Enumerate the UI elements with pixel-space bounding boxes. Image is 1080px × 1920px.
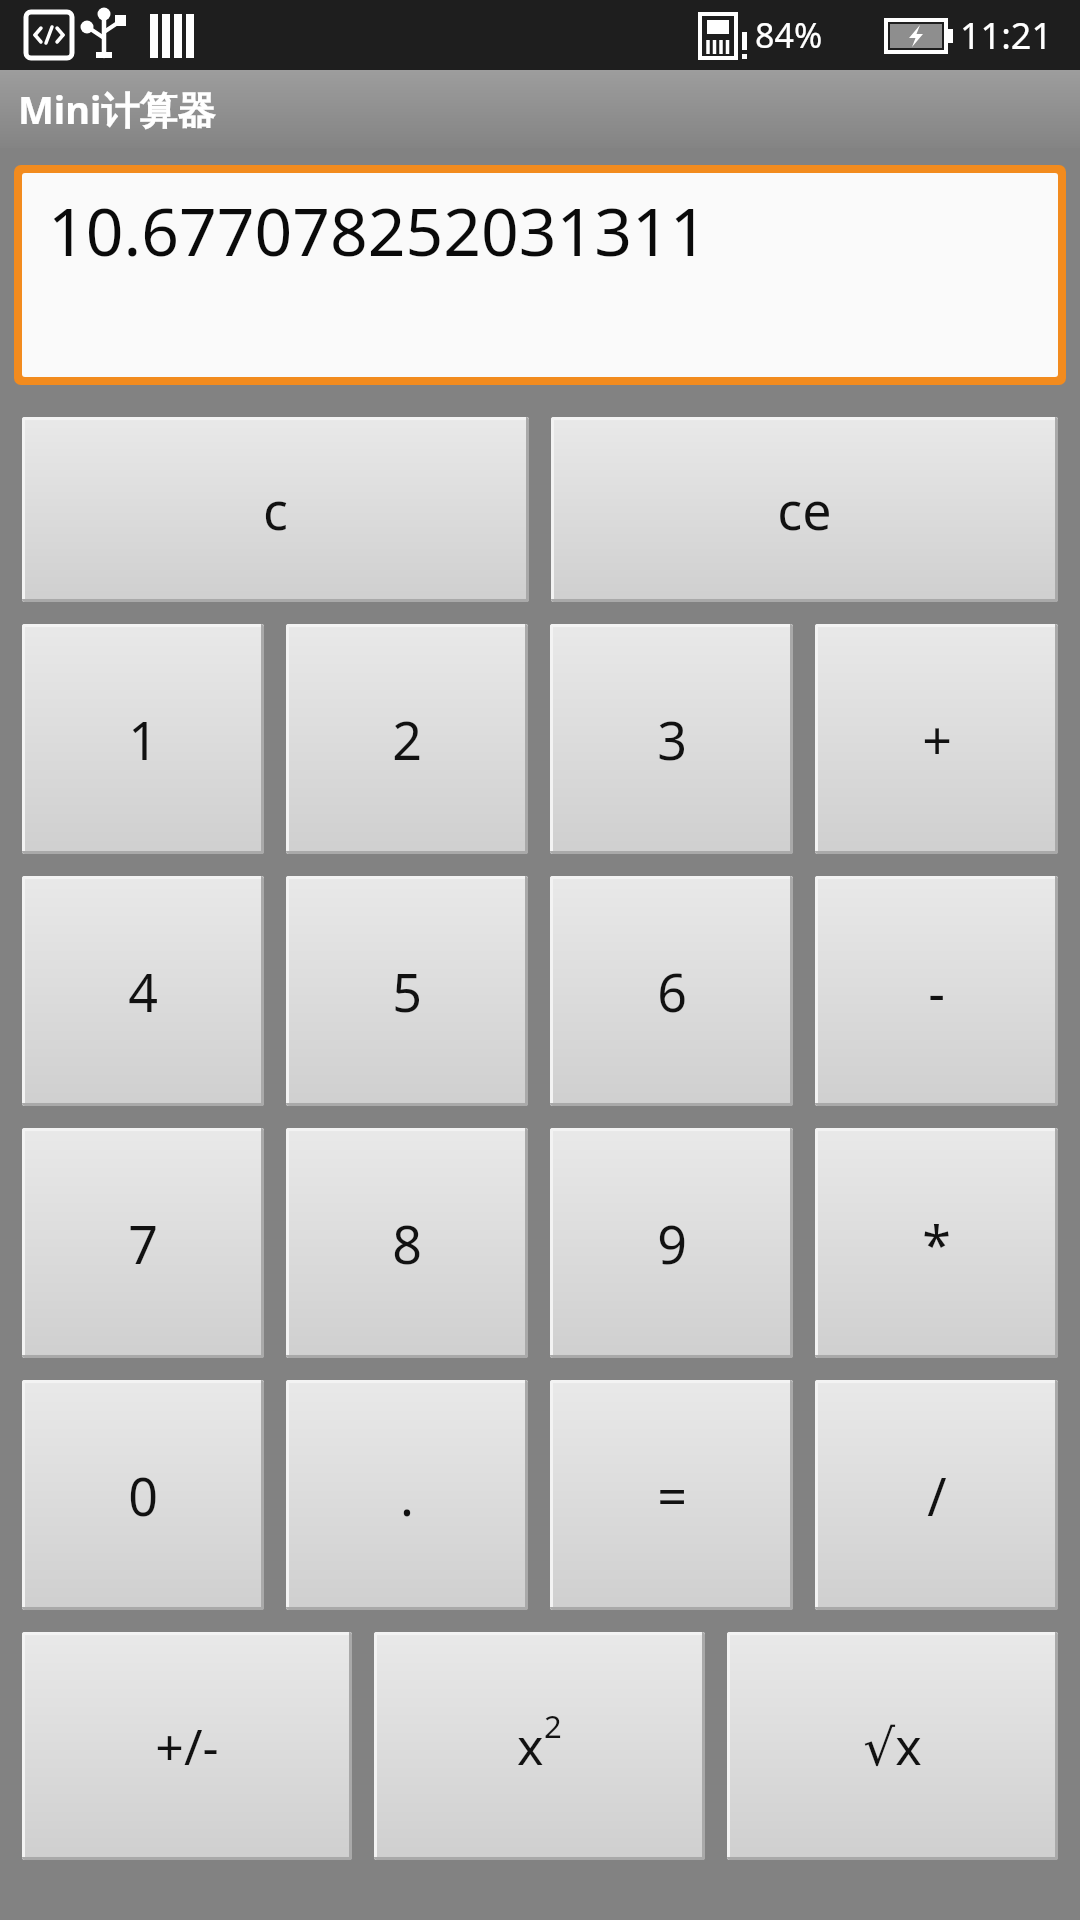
staticText: 11:21 [960,11,1053,60]
button[interactable]: 3 [550,624,793,854]
staticText: +/- [155,1712,219,1780]
button[interactable]: 0 [22,1380,264,1610]
button[interactable]: 5 [286,876,528,1106]
button[interactable]: - [815,876,1058,1106]
button[interactable]: x [374,1632,705,1860]
button[interactable]: √x [727,1632,1058,1860]
staticText: √x [863,1712,922,1780]
button[interactable]: 7 [22,1128,264,1358]
button[interactable]: 8 [286,1128,528,1358]
staticText: 7 [128,1208,158,1279]
button[interactable]: . [286,1380,528,1610]
button[interactable]: 4 [22,876,264,1106]
staticText: = [657,1460,687,1531]
staticText: 2 [392,704,422,775]
button[interactable]: = [550,1380,793,1610]
staticText: 3 [657,704,687,775]
staticText: Mini计算器 [18,83,216,135]
staticText: / [927,1460,947,1531]
button[interactable]: c [22,417,529,602]
staticText: 0 [128,1460,158,1531]
staticText: x [517,1712,544,1780]
staticText: * [922,1208,951,1279]
button[interactable]: * [815,1128,1058,1358]
button[interactable]: +/- [22,1632,352,1860]
staticText: 4 [128,956,158,1027]
staticText: 2 [544,1705,562,1747]
button[interactable]: 1 [22,624,264,854]
button[interactable]: 10.677078252031311 [22,173,1058,377]
staticText: 10.677078252031311 [48,185,708,275]
staticText: 6 [657,956,687,1027]
staticText: ce [777,474,832,545]
staticText: 1 [128,704,158,775]
button[interactable]: ce [551,417,1058,602]
staticText: . [400,1460,414,1531]
button[interactable]: + [815,624,1058,854]
staticText: 84% [755,12,823,58]
button[interactable]: 6 [550,876,793,1106]
button[interactable]: 9 [550,1128,793,1358]
staticText: 8 [392,1208,422,1279]
staticText: + [922,704,952,775]
staticText: - [928,956,945,1027]
button[interactable]: 2 [286,624,528,854]
staticText: c [263,474,288,545]
button[interactable]: / [815,1380,1058,1610]
staticText: 9 [657,1208,687,1279]
staticText: 5 [392,956,422,1027]
